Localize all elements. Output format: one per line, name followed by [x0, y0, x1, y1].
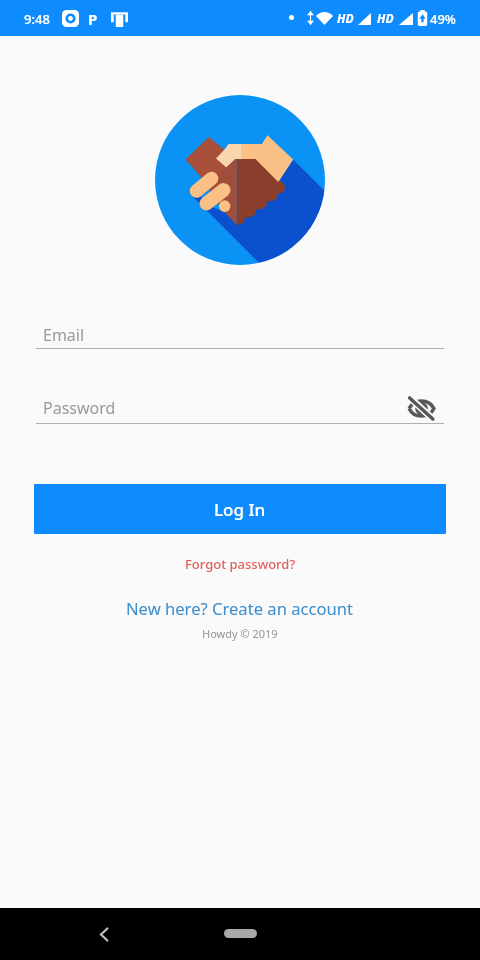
- staticText: New here? Create an account: [126, 597, 354, 620]
- button[interactable]: New here? Create an account: [116, 595, 364, 622]
- staticText: P: [88, 9, 98, 29]
- staticText: Email: [43, 324, 85, 346]
- staticText: HD: [337, 10, 354, 26]
- button[interactable]: Forgot password?: [175, 553, 306, 575]
- button[interactable]: Home: [224, 929, 257, 938]
- staticText: 9:48: [24, 10, 50, 28]
- staticText: Log In: [214, 498, 266, 521]
- staticText: Howdy © 2019: [202, 626, 278, 641]
- button[interactable]: Log In: [34, 484, 446, 534]
- staticText: Password: [43, 397, 116, 419]
- button[interactable]: Back: [88, 919, 119, 950]
- staticText: HD: [377, 10, 394, 26]
- staticText: 49%: [430, 10, 456, 28]
- staticText: Forgot password?: [185, 555, 296, 573]
- button[interactable]: Show password: [404, 396, 438, 420]
